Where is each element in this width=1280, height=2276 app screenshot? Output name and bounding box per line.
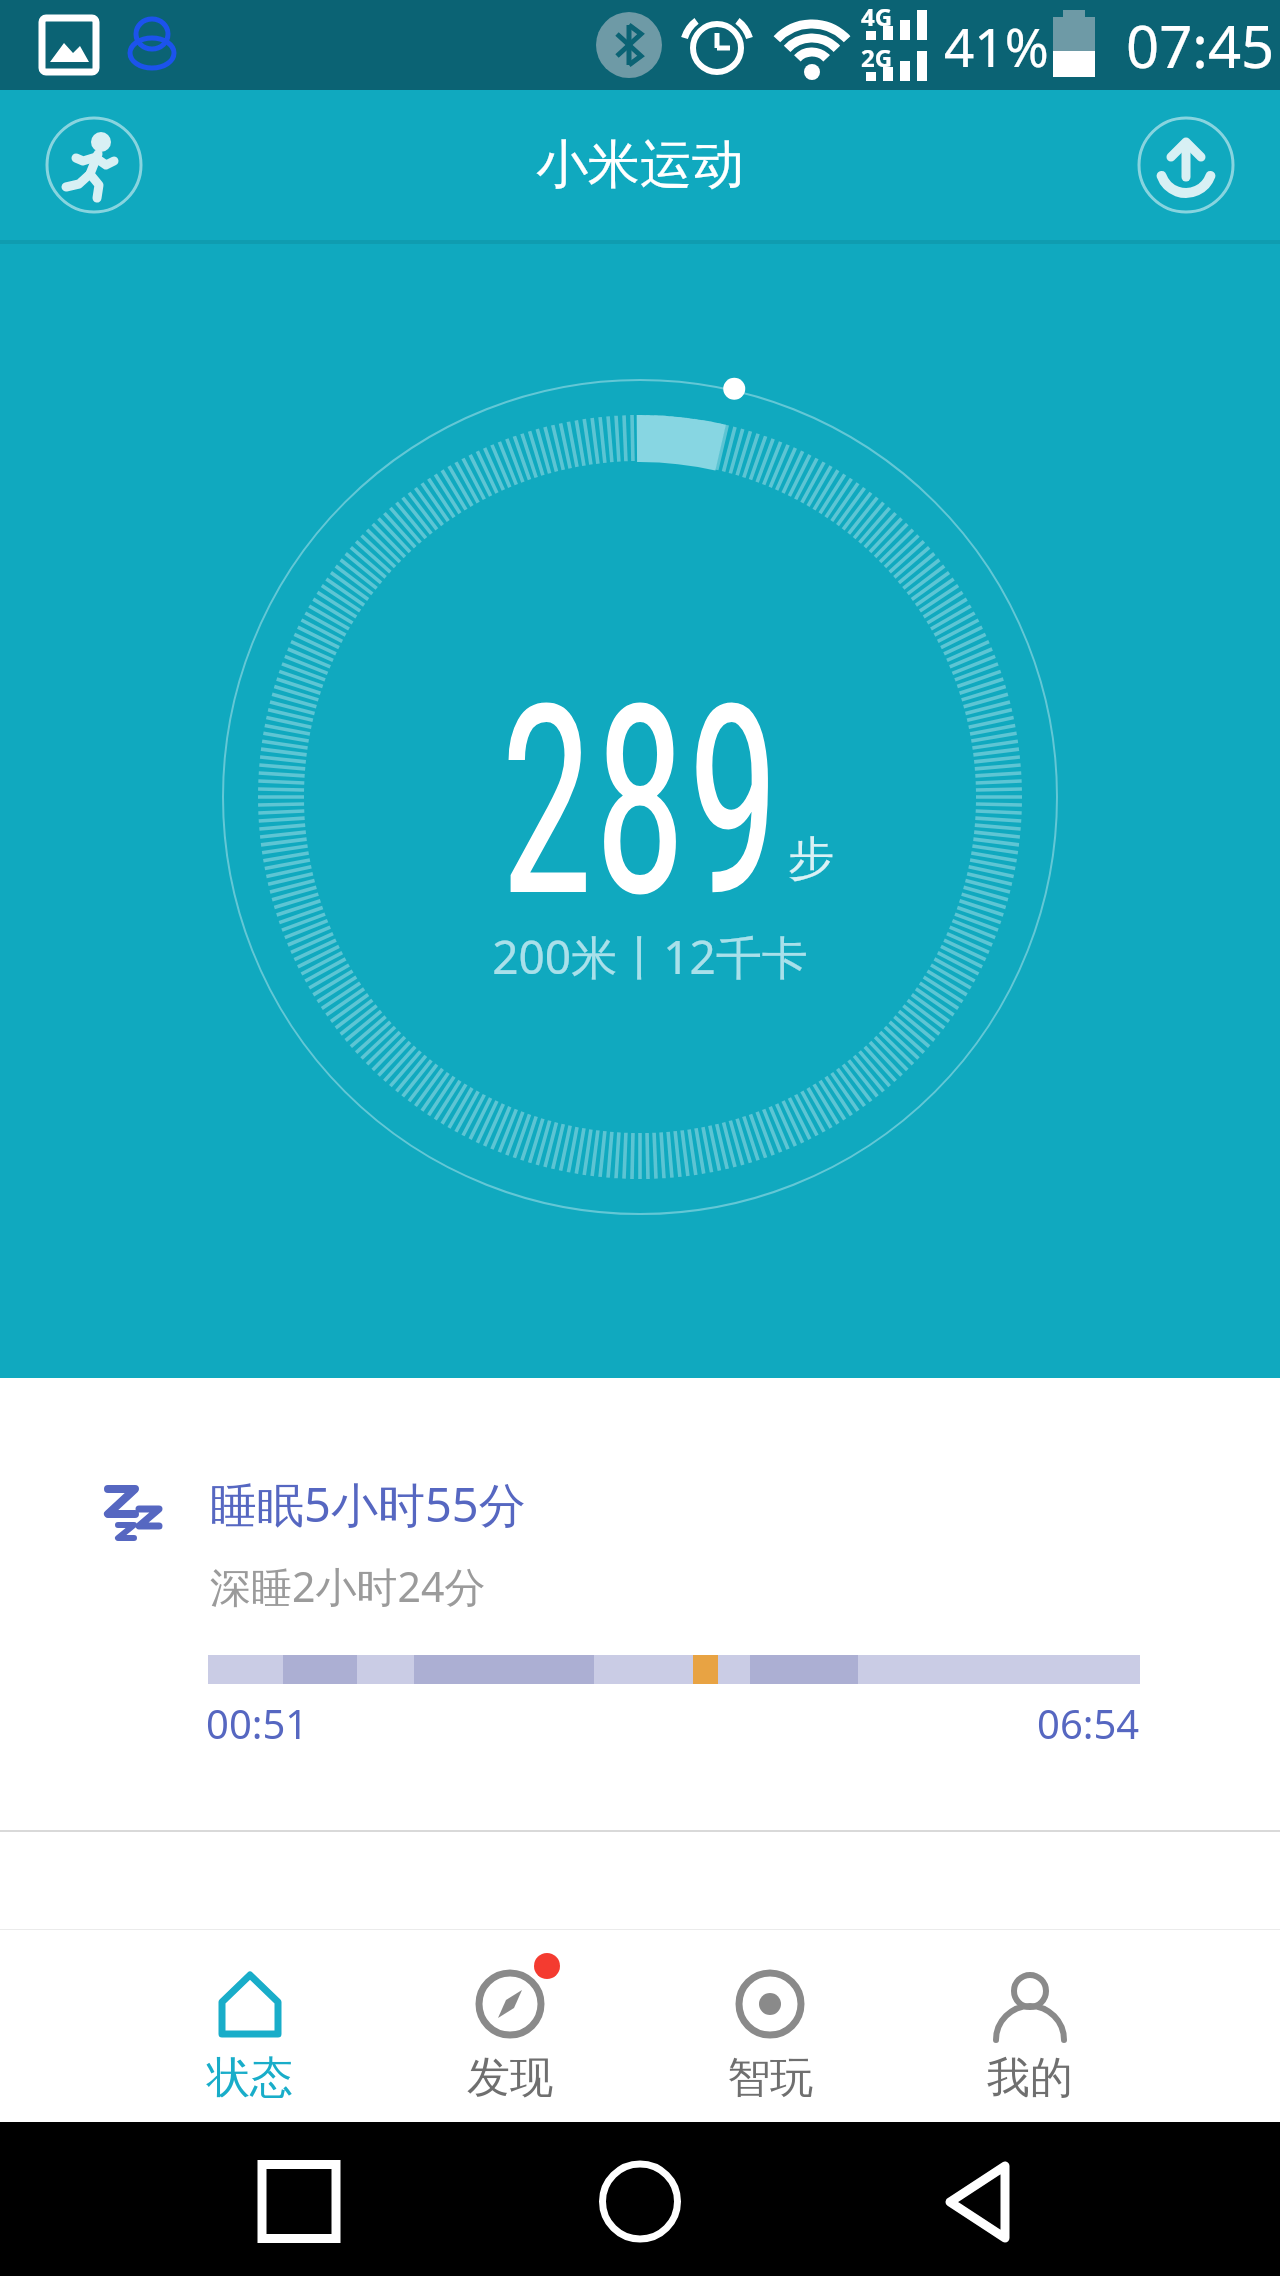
button[interactable] [877, 2122, 1077, 2276]
staticText: 2G [861, 41, 893, 74]
staticText: 4G [861, 0, 893, 33]
staticText: 步 [788, 830, 834, 888]
staticText: 发现 [467, 2051, 553, 2105]
staticText: 06:54 [1037, 1696, 1140, 1750]
staticText: 状态 [207, 2051, 293, 2105]
staticText: 200米丨12千卡 [10, 925, 1280, 988]
button[interactable]: 我的 [900, 1930, 1160, 2122]
button[interactable] [1138, 117, 1234, 213]
staticText: 07:45 [1126, 6, 1275, 85]
button[interactable]: 睡眠5小时55分 [0, 1378, 1280, 1830]
staticText: 我的 [987, 2051, 1073, 2105]
button[interactable]: 智玩 [640, 1930, 900, 2122]
staticText: 智玩 [727, 2051, 813, 2105]
button[interactable] [199, 2122, 399, 2276]
staticText: 小米运动 [536, 132, 744, 198]
staticText: 41% [944, 10, 1049, 82]
button[interactable] [540, 2122, 740, 2276]
button[interactable]: 发现 [380, 1930, 640, 2122]
staticText: 深睡2小时24分 [210, 1558, 486, 1614]
staticText: 289 [179, 648, 1101, 956]
staticText: 00:51 [206, 1696, 309, 1750]
button[interactable] [46, 117, 142, 213]
staticText: 睡眠5小时55分 [210, 1472, 526, 1536]
button[interactable]: 状态 [120, 1930, 380, 2122]
